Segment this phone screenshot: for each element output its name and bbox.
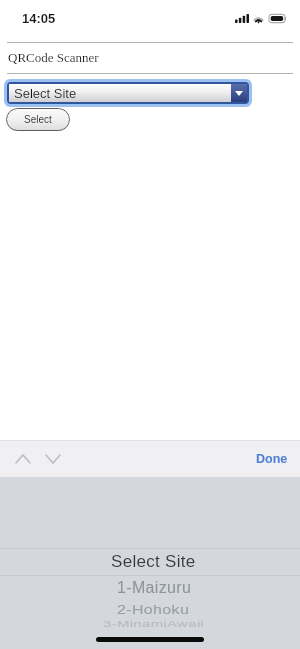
- staticText: 3-MinamiAwaji: [103, 619, 205, 627]
- staticText: Select: [24, 114, 52, 125]
- button[interactable]: Select Site: [4, 79, 252, 107]
- button[interactable]: Previous field: [9, 445, 37, 473]
- staticText: Select Site: [14, 86, 77, 101]
- button[interactable]: 2-Hohoku: [0, 600, 300, 620]
- staticText: QRCode Scanner: [8, 50, 99, 64]
- button[interactable]: 3-MinamiAwaji: [0, 616, 300, 630]
- staticText: 1-Maizuru: [117, 579, 192, 597]
- button[interactable]: Done: [244, 445, 300, 473]
- staticText: 14:05: [22, 11, 56, 26]
- button[interactable]: 1-Maizuru: [0, 577, 300, 599]
- staticText: Done: [256, 452, 288, 466]
- button[interactable]: Select: [6, 108, 70, 131]
- button[interactable]: Select Site: [0, 548, 300, 575]
- button[interactable]: Next field: [39, 445, 67, 473]
- staticText: Select Site: [111, 552, 196, 571]
- staticText: 2-Hohoku: [117, 603, 190, 617]
